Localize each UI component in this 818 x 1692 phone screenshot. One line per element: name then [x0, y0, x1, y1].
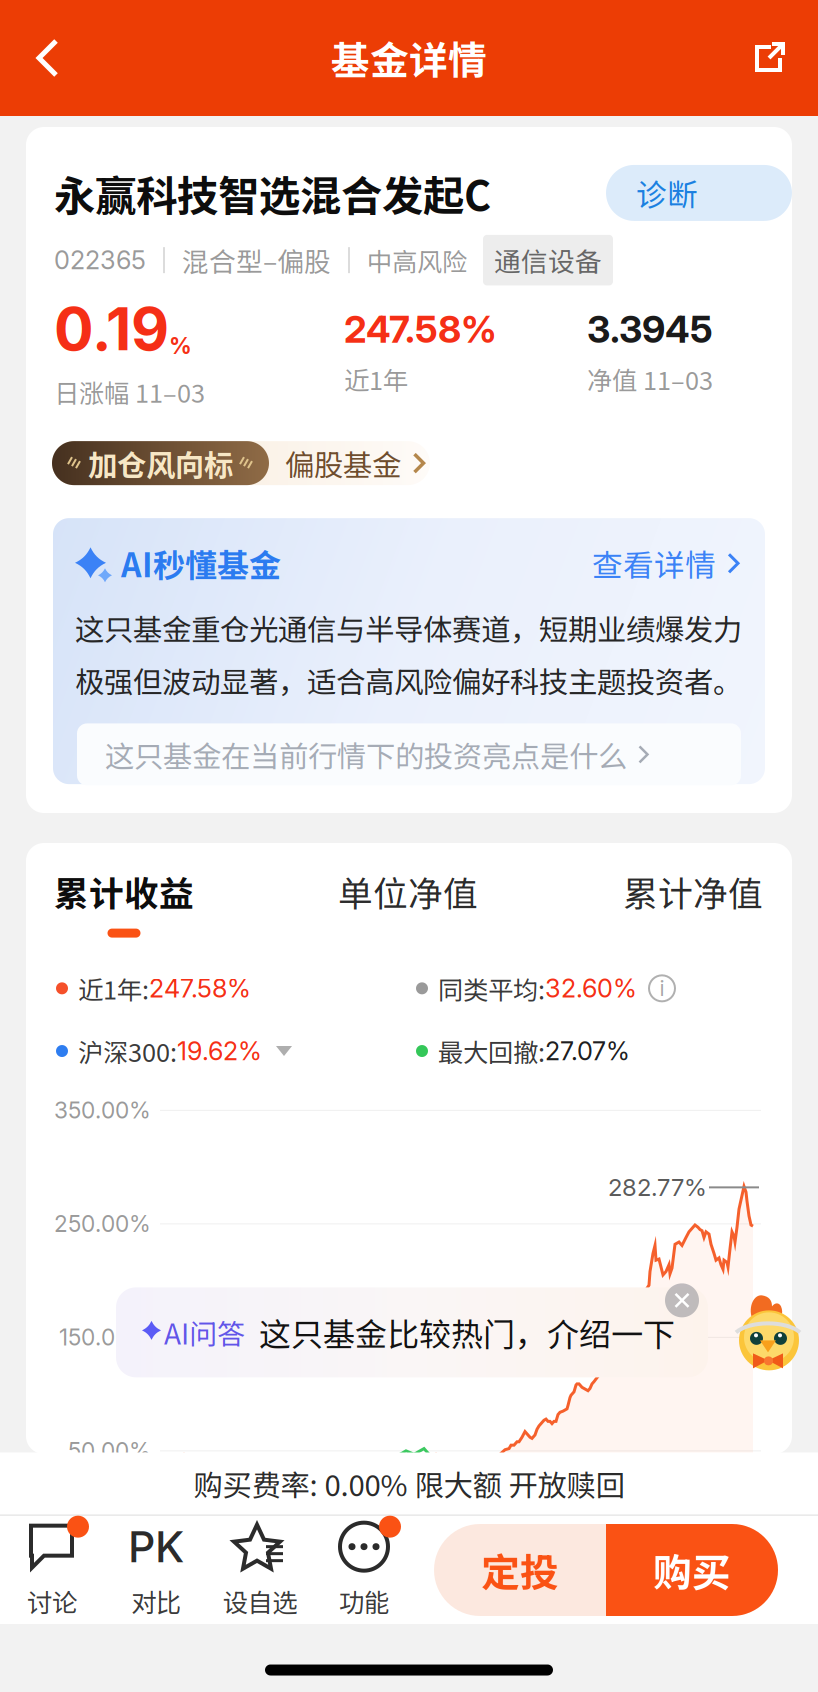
button[interactable]: PK: [104, 1518, 208, 1622]
staticText: 50.00%: [68, 1437, 151, 1465]
staticText: 购买费率: 0.00% 限大额 开放赎回: [193, 1462, 624, 1505]
staticText: 诊断: [636, 171, 698, 215]
button[interactable]: 单位净值: [310, 862, 506, 942]
button[interactable]: 分享: [722, 0, 818, 116]
staticText: 19.62%: [177, 1036, 262, 1066]
staticText: 购买: [653, 1542, 731, 1598]
staticText: 净值 11–03: [587, 361, 713, 397]
staticText: 这只基金重仓光通信与半导体赛道，短期业绩爆发力: [75, 606, 742, 649]
staticText: 累计收益: [54, 866, 194, 917]
button[interactable]: 设自选: [208, 1518, 312, 1622]
staticText: i: [659, 975, 664, 1001]
staticText: 247.58%: [149, 973, 251, 1004]
staticText: 282.77%: [608, 1173, 707, 1202]
staticText: 极强但波动显著，适合高风险偏好科技主题投资者。: [75, 659, 742, 701]
staticText: 功能: [339, 1583, 389, 1619]
button[interactable]: 返回: [0, 0, 96, 116]
staticText: 定投: [481, 1542, 559, 1598]
staticText: 近1年: [344, 361, 408, 397]
staticText: 247.58%: [344, 306, 497, 352]
staticText: 同类平均:: [438, 970, 545, 1007]
staticText: 累计净值: [623, 866, 763, 917]
button[interactable]: 累计收益: [26, 862, 222, 942]
staticText: AI问答: [164, 1312, 245, 1353]
staticText: 混合型–偏股: [182, 241, 331, 279]
staticText: 32.60%: [545, 973, 637, 1004]
staticText: 永赢科技智选混合发起C: [54, 163, 491, 223]
staticText: 0.19: [54, 293, 169, 364]
staticText: %: [169, 332, 192, 359]
staticText: 250.00%: [54, 1210, 151, 1238]
staticText: 偏股基金: [285, 442, 401, 484]
button[interactable]: 累计净值: [595, 862, 791, 942]
button[interactable]: 诊断: [606, 165, 792, 221]
staticText: 基金详情: [331, 30, 487, 86]
staticText: 最大回撤:: [438, 1033, 545, 1069]
staticText: 中高风险: [367, 242, 467, 278]
staticText: 这只基金在当前行情下的投资亮点是什么: [105, 733, 627, 776]
staticText: 设自选: [222, 1583, 297, 1619]
staticText: PK: [128, 1521, 184, 1572]
staticText: 350.00%: [54, 1097, 151, 1124]
staticText: 150.00%: [59, 1324, 151, 1351]
staticText: 单位净值: [338, 866, 478, 917]
button[interactable]: 讨论: [0, 1518, 104, 1622]
button[interactable]: 查看详情: [592, 541, 765, 585]
staticText: 讨论: [27, 1583, 77, 1619]
staticText: 沪深300:: [78, 1033, 177, 1069]
staticText: 查看详情: [592, 541, 716, 585]
button[interactable]: 这只基金在当前行情下的投资亮点是什么: [77, 723, 741, 785]
staticText: 这只基金比较热门，介绍一下: [259, 1309, 675, 1355]
button[interactable]: 加仓风向标: [52, 441, 430, 485]
button[interactable]: 功能: [312, 1518, 416, 1622]
staticText: 27.07%: [545, 1036, 630, 1066]
staticText: 022365: [54, 245, 146, 275]
staticText: 3.3945: [587, 306, 713, 352]
staticText: 加仓风向标: [88, 442, 233, 484]
button[interactable]: 关闭: [660, 1278, 704, 1322]
staticText: 通信设备: [494, 241, 602, 279]
staticText: 日涨幅 11–03: [54, 373, 205, 410]
staticText: 对比: [131, 1583, 181, 1619]
staticText: AI秒懂基金: [121, 540, 281, 586]
staticText: 近1年:: [78, 970, 149, 1007]
button[interactable]: 购买: [606, 1524, 778, 1616]
button[interactable]: 定投: [434, 1524, 606, 1616]
